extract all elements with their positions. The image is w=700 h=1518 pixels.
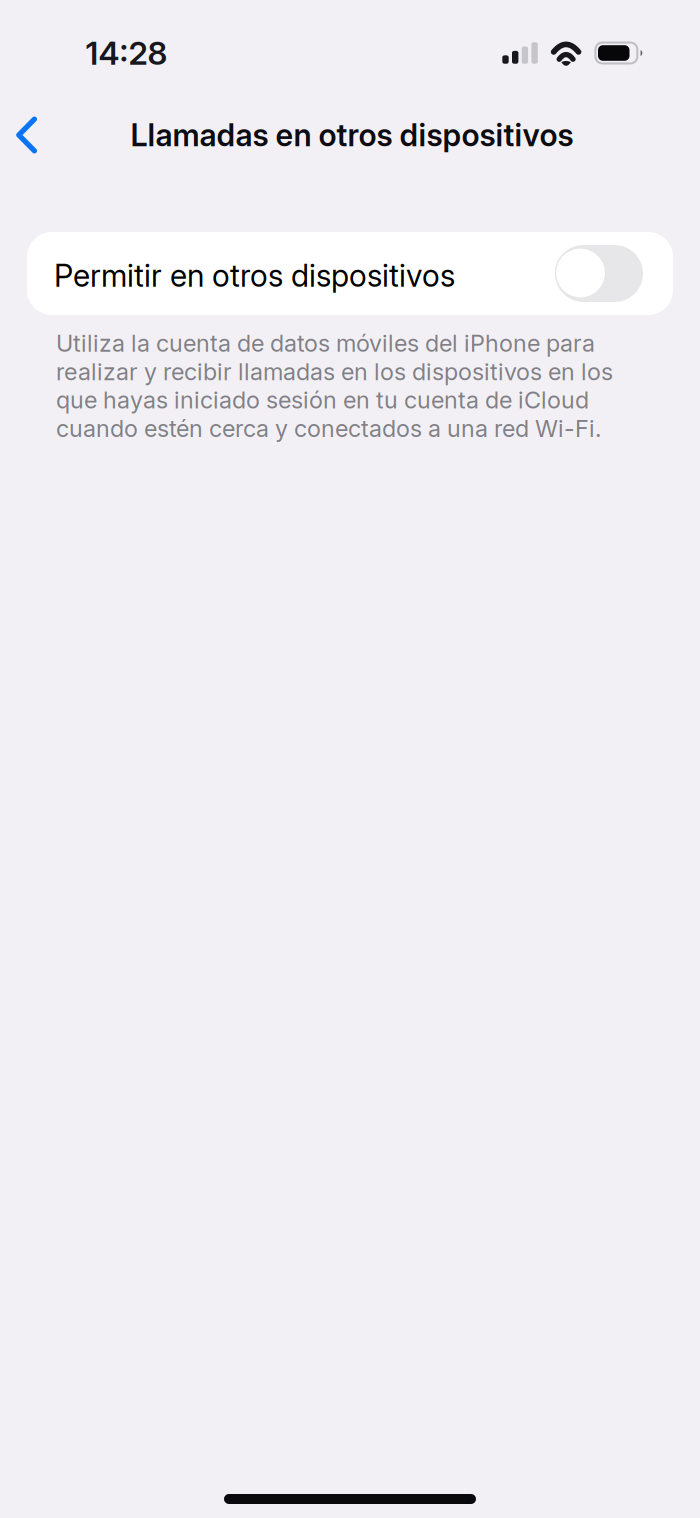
- staticText: 14:28: [85, 34, 167, 72]
- staticText: Utiliza la cuenta de datos móviles del i…: [56, 329, 613, 443]
- staticText: Llamadas en otros dispositivos: [130, 116, 573, 153]
- button[interactable]: Permitir en otros dispositivos: [27, 232, 673, 315]
- staticText: Permitir en otros dispositivos: [54, 257, 455, 294]
- button[interactable]: Back: [0, 97, 63, 173]
